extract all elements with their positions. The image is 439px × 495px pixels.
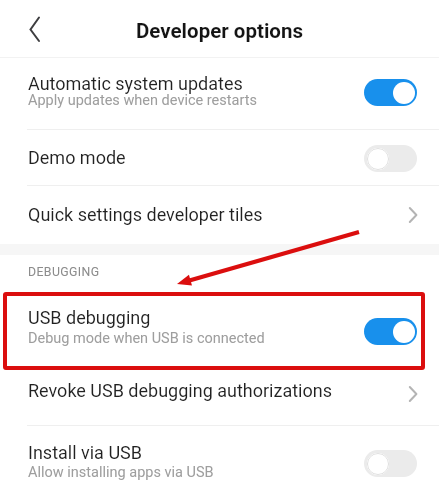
button[interactable]: [364, 318, 417, 345]
button[interactable]: [0, 371, 439, 425]
staticText: USB debugging: [28, 307, 151, 328]
button[interactable]: [0, 58, 439, 129]
button[interactable]: [364, 450, 417, 477]
button[interactable]: [364, 145, 417, 172]
staticText: Demo mode: [28, 147, 126, 168]
staticText: Install via USB: [28, 442, 142, 463]
button[interactable]: [0, 296, 439, 366]
staticText: Revoke USB debugging authorizations: [28, 380, 332, 401]
staticText: Apply updates when device restarts: [28, 92, 257, 109]
staticText: DEBUGGING: [28, 265, 100, 279]
button[interactable]: [14, 8, 56, 50]
button[interactable]: [0, 130, 439, 185]
staticText: Developer options: [136, 19, 303, 43]
staticText: Debug mode when USB is connected: [28, 330, 265, 347]
staticText: Allow installing apps via USB: [28, 464, 214, 481]
staticText: Automatic system updates: [28, 73, 243, 94]
button[interactable]: [364, 79, 417, 106]
button[interactable]: [0, 426, 439, 495]
staticText: Quick settings developer tiles: [28, 204, 263, 225]
button[interactable]: [0, 186, 439, 244]
